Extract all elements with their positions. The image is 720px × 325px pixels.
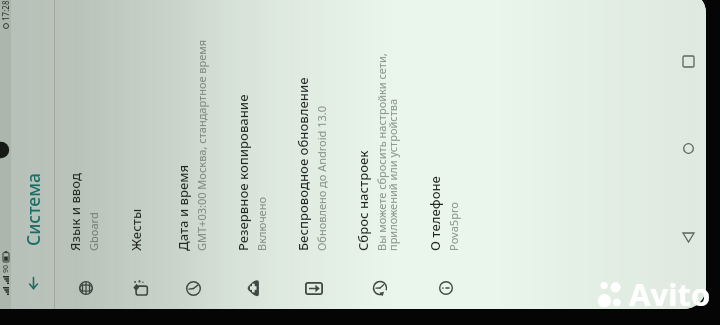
staticText: Дата и время	[174, 164, 192, 251]
button[interactable]: Home	[670, 131, 706, 167]
staticText: Вы можете сбросить настройки сети, прило…	[374, 53, 401, 251]
staticText: Жесты	[127, 208, 145, 251]
button[interactable]: Сброс настроек	[343, 0, 415, 309]
staticText: Резервное копирование	[234, 94, 252, 251]
button[interactable]: Жесты	[115, 0, 163, 309]
staticText: Беспроводное обновление	[294, 77, 312, 251]
button[interactable]: Back	[11, 272, 55, 296]
button[interactable]: Язык и ввод	[55, 0, 115, 309]
staticText: Gboard	[86, 212, 101, 251]
button[interactable]: Беспроводное обновление	[283, 0, 343, 309]
staticText: Сброс настроек	[354, 150, 372, 251]
button[interactable]: Резервное копирование	[223, 0, 283, 309]
button[interactable]: О телефоне	[415, 0, 475, 309]
staticText: Pova5pro	[446, 202, 461, 251]
button[interactable]: Recents	[670, 44, 706, 80]
staticText: GMT+03:00 Москва, стандартное время	[194, 39, 209, 251]
button[interactable]: Back	[670, 220, 706, 256]
staticText: Включено	[254, 197, 269, 251]
staticText: 17:28	[0, 0, 11, 21]
staticText: Система	[21, 173, 45, 246]
button[interactable]: Дата и время	[163, 0, 223, 309]
staticText: Язык и ввод	[66, 172, 84, 251]
staticText: О телефоне	[426, 176, 444, 251]
staticText: Avito	[629, 273, 711, 315]
staticText: 90	[1, 264, 11, 273]
staticText: Обновлено до Android 13.0	[314, 105, 329, 251]
